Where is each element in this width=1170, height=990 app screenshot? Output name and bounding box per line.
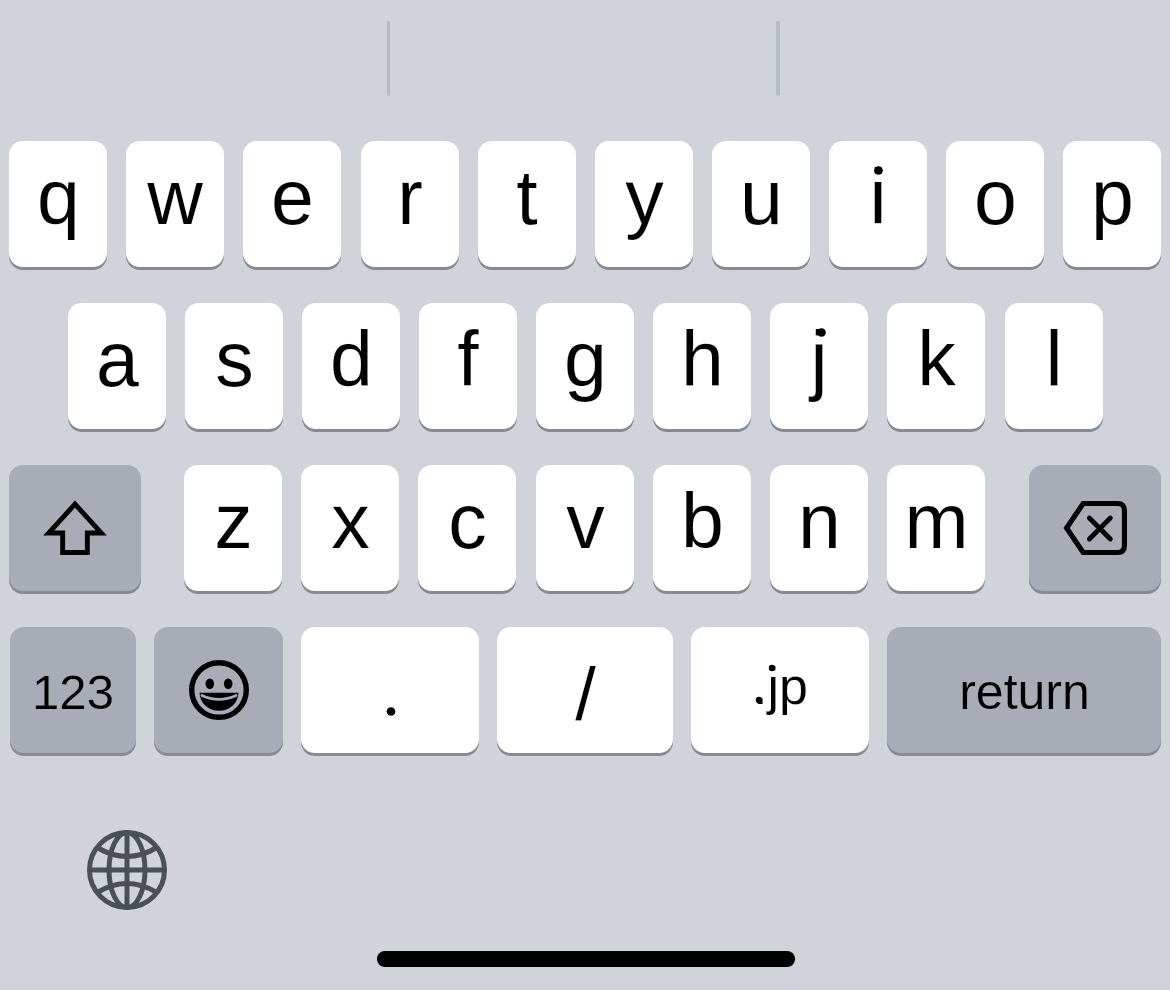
staticText: y: [625, 154, 664, 240]
button[interactable]: Change keyboard: [86, 829, 168, 911]
staticText: j: [810, 316, 828, 402]
button[interactable]: h: [653, 303, 751, 429]
button[interactable]: j: [770, 303, 868, 429]
staticText: o: [974, 154, 1017, 240]
button[interactable]: e: [243, 141, 341, 267]
staticText: k: [917, 316, 956, 402]
button[interactable]: i: [829, 141, 927, 267]
button[interactable]: n: [770, 465, 868, 591]
button[interactable]: 123: [10, 627, 136, 753]
button[interactable]: u: [712, 141, 810, 267]
staticText: z: [214, 478, 253, 564]
staticText: h: [681, 316, 724, 402]
button[interactable]: m: [887, 465, 985, 591]
staticText: e: [271, 154, 314, 240]
staticText: 123: [32, 665, 114, 720]
button[interactable]: Shift: [9, 465, 141, 591]
button[interactable]: x: [301, 465, 399, 591]
staticText: c: [448, 478, 487, 564]
staticText: return: [959, 664, 1090, 720]
button[interactable]: Emoji: [154, 627, 283, 753]
button[interactable]: d: [302, 303, 400, 429]
staticText: f: [457, 316, 479, 402]
staticText: p: [1091, 154, 1134, 240]
button[interactable]: y: [595, 141, 693, 267]
button[interactable]: return: [887, 627, 1161, 753]
button[interactable]: .jp: [691, 627, 869, 753]
staticText: q: [37, 154, 80, 240]
staticText: r: [397, 154, 423, 240]
button[interactable]: w: [126, 141, 224, 267]
staticText: m: [904, 478, 969, 564]
button[interactable]: s: [185, 303, 283, 429]
staticText: n: [798, 478, 841, 564]
button[interactable]: v: [536, 465, 634, 591]
staticText: /: [575, 653, 596, 736]
staticText: g: [564, 316, 607, 402]
staticText: i: [869, 154, 887, 240]
button[interactable]: o: [946, 141, 1044, 267]
button[interactable]: r: [361, 141, 459, 267]
staticText: s: [215, 316, 254, 402]
staticText: t: [516, 154, 538, 240]
staticText: a: [96, 316, 139, 402]
button[interactable]: Backspace: [1029, 465, 1161, 591]
staticText: d: [330, 316, 373, 402]
staticText: w: [147, 154, 203, 240]
button[interactable]: /: [497, 627, 673, 753]
staticText: x: [331, 478, 370, 564]
button[interactable]: g: [536, 303, 634, 429]
button[interactable]: l: [1005, 303, 1103, 429]
staticText: v: [566, 478, 605, 564]
staticText: b: [681, 478, 724, 564]
button[interactable]: p: [1063, 141, 1161, 267]
staticText: .jp: [753, 657, 808, 715]
button[interactable]: k: [887, 303, 985, 429]
button[interactable]: z: [184, 465, 282, 591]
button[interactable]: a: [68, 303, 166, 429]
button[interactable]: b: [653, 465, 751, 591]
button[interactable]: q: [9, 141, 107, 267]
button[interactable]: t: [478, 141, 576, 267]
staticText: u: [740, 154, 783, 240]
button[interactable]: c: [418, 465, 516, 591]
button[interactable]: f: [419, 303, 517, 429]
button[interactable]: Period: [301, 627, 479, 753]
staticText: l: [1045, 316, 1063, 402]
